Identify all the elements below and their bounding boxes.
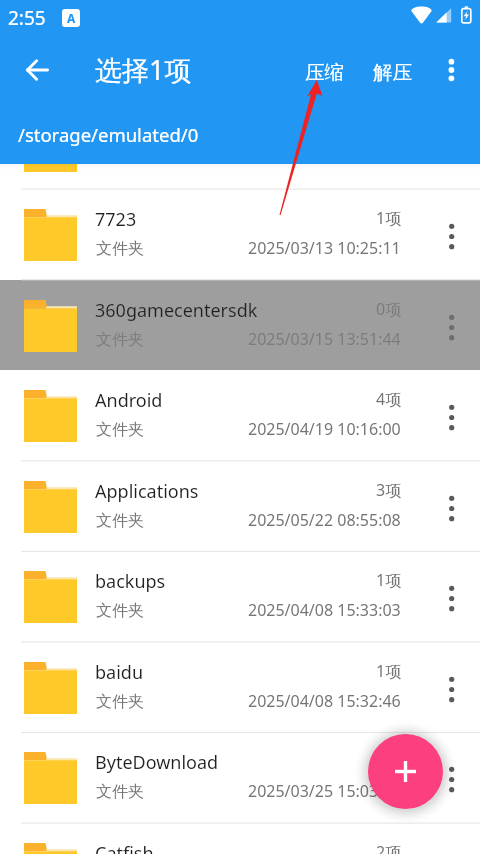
staticText: 2025/03/13 10:25:11	[248, 237, 401, 259]
staticText: 2025/03/12 09:12:44	[248, 142, 401, 164]
staticText: 解压	[373, 60, 412, 85]
staticText: 3项	[376, 479, 402, 501]
staticText: A	[67, 10, 76, 26]
staticText: 2项	[376, 841, 402, 854]
button[interactable]: Item menu	[431, 307, 471, 347]
button[interactable]: Add	[368, 734, 443, 809]
button[interactable]: 7723	[0, 189, 480, 280]
button[interactable]: ByteDownload	[0, 732, 480, 823]
button[interactable]: Item menu	[431, 488, 471, 528]
staticText: 2025/03/25 15:03:38	[248, 780, 401, 802]
button[interactable]: 360gamecentersdk	[0, 280, 480, 371]
staticText: 文件夹	[96, 601, 144, 621]
staticText: 1项	[376, 750, 402, 772]
staticText: baidu	[95, 660, 144, 685]
button[interactable]: Android	[0, 370, 480, 461]
button[interactable]: Alarms	[0, 100, 480, 191]
staticText: 1项	[376, 207, 402, 229]
staticText: 文件夹	[96, 239, 144, 259]
button[interactable]: Back	[16, 48, 59, 91]
staticText: Android	[95, 388, 163, 413]
staticText: 文件夹	[96, 692, 144, 712]
button[interactable]: Item menu	[431, 759, 471, 799]
staticText: 文件夹	[96, 420, 144, 440]
staticText: ByteDownload	[95, 750, 219, 775]
button[interactable]: Item menu	[431, 397, 471, 437]
staticText: 360gamecentersdk	[95, 298, 258, 323]
button[interactable]: Catfish	[0, 823, 480, 854]
staticText: 7723	[95, 207, 137, 232]
staticText: 压缩	[305, 60, 344, 85]
button[interactable]: 解压	[373, 60, 412, 85]
staticText: Applications	[95, 479, 199, 504]
staticText: 2025/03/15 13:51:44	[248, 328, 401, 350]
staticText: 1项	[376, 569, 402, 591]
staticText: /storage/emulated/0	[18, 122, 199, 147]
staticText: 2:55	[8, 5, 46, 31]
button[interactable]: More options	[430, 48, 472, 90]
button[interactable]: baidu	[0, 642, 480, 733]
staticText: 1项	[376, 660, 402, 682]
button[interactable]: Item menu	[431, 216, 471, 256]
staticText: 2025/05/22 08:55:08	[248, 509, 401, 531]
staticText: Alarms	[95, 112, 155, 137]
staticText: 文件夹	[96, 330, 144, 350]
button[interactable]: Applications	[0, 461, 480, 552]
button[interactable]: Item menu	[431, 669, 471, 709]
staticText: 2025/04/08 15:33:03	[248, 599, 401, 621]
button[interactable]: 压缩	[305, 60, 344, 85]
button[interactable]: backups	[0, 551, 480, 642]
staticText: 选择1项	[95, 51, 192, 88]
button[interactable]: Item menu	[431, 578, 471, 618]
staticText: 文件夹	[96, 511, 144, 531]
staticText: 2025/04/19 10:16:00	[248, 418, 401, 440]
staticText: 4项	[376, 388, 402, 410]
staticText: Catfish	[95, 841, 154, 854]
staticText: 文件夹	[96, 782, 144, 802]
staticText: 2025/04/08 15:32:46	[248, 690, 401, 712]
staticText: 0项	[376, 298, 402, 320]
staticText: backups	[95, 569, 166, 594]
